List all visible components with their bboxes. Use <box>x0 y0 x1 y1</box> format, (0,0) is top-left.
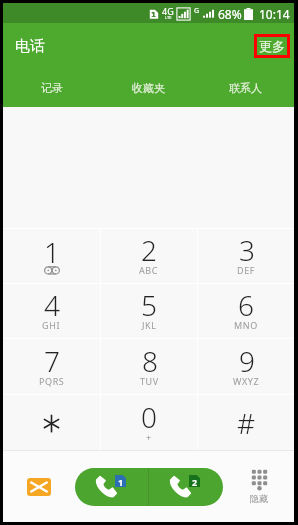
button[interactable]: 隐藏 <box>223 451 294 522</box>
staticText: 更多 <box>259 38 285 54</box>
staticText: 4G <box>162 5 174 17</box>
staticText: 2 <box>192 476 198 488</box>
button[interactable]: # <box>198 395 294 450</box>
staticText: JKL <box>142 319 157 331</box>
button[interactable]: 收藏夹 <box>100 69 197 107</box>
staticText: 收藏夹 <box>132 81 165 95</box>
staticText: # <box>237 404 256 442</box>
button[interactable]: 5 <box>101 284 197 338</box>
staticText: LTE <box>165 15 172 20</box>
button[interactable]: 记录 <box>3 69 100 107</box>
button[interactable]: 2 <box>101 229 197 283</box>
staticText: 1 <box>44 233 60 271</box>
staticText: 4 <box>44 286 60 324</box>
staticText: 电话 <box>15 37 45 56</box>
staticText: + <box>146 431 152 443</box>
button[interactable]: 联系人 <box>197 69 294 107</box>
staticText: GHI <box>42 319 61 331</box>
button[interactable]: 0 <box>101 395 197 450</box>
button[interactable]: Messages <box>3 451 75 522</box>
button[interactable]: 4 <box>3 284 100 338</box>
staticText: 9 <box>239 342 255 380</box>
button[interactable]: 更多 <box>254 34 290 58</box>
staticText: G <box>194 6 200 16</box>
staticText: 0 <box>141 398 157 436</box>
staticText: 5 <box>141 286 157 324</box>
button[interactable]: 9 <box>198 339 294 394</box>
staticText: 10:14 <box>259 6 290 22</box>
staticText: WXYZ <box>233 375 260 387</box>
staticText: 7 <box>44 342 60 380</box>
button[interactable]: 3 <box>198 229 294 283</box>
staticText: MNO <box>234 319 258 331</box>
staticText: DEF <box>237 264 256 276</box>
staticText: 1 <box>118 476 124 488</box>
staticText: 3 <box>239 231 255 269</box>
button[interactable] <box>3 395 100 450</box>
staticText: 68% <box>218 6 242 22</box>
staticText: TUV <box>140 375 159 387</box>
staticText: 隐藏 <box>250 493 268 504</box>
button[interactable]: 7 <box>3 339 100 394</box>
button[interactable]: Call with SIM 2 <box>149 468 223 506</box>
staticText: 2 <box>141 231 157 269</box>
staticText: 联系人 <box>229 81 262 95</box>
staticText: ABC <box>139 264 159 276</box>
staticText: 8 <box>142 342 158 380</box>
staticText: 6 <box>238 286 254 324</box>
button[interactable]: 6 <box>198 284 294 338</box>
button[interactable]: Call with SIM 1 <box>75 468 148 506</box>
button[interactable]: 8 <box>101 339 197 394</box>
button[interactable]: 1 <box>3 229 100 283</box>
staticText: 记录 <box>41 81 63 95</box>
staticText: PQRS <box>39 375 65 387</box>
